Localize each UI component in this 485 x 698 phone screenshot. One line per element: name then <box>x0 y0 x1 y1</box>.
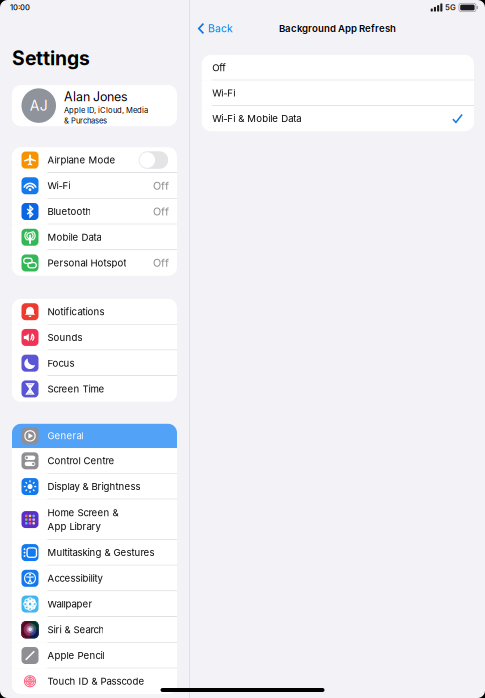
button[interactable]: Wi-Fi & Mobile Data <box>202 106 474 131</box>
button[interactable]: Airplane Mode <box>12 147 177 173</box>
staticText: Wi-Fi <box>47 180 70 192</box>
staticText: Bluetooth <box>47 206 91 217</box>
staticText: Home Screen & <box>47 507 118 519</box>
button[interactable]: Home Screen & <box>12 499 177 540</box>
staticText: Wi-Fi & Mobile Data <box>212 113 301 124</box>
staticText: Off <box>153 205 169 218</box>
staticText: Off <box>212 62 226 73</box>
staticText: Apple Pencil <box>47 650 104 661</box>
staticText: Focus <box>47 357 74 369</box>
staticText: App Library <box>47 521 100 532</box>
button[interactable]: Siri & Search <box>12 617 177 643</box>
staticText: Apple ID, iCloud, Media <box>64 106 148 115</box>
button[interactable]: Wi-Fi <box>12 173 177 199</box>
staticText: Sounds <box>47 332 82 343</box>
button[interactable]: Apple Pencil <box>12 643 177 668</box>
staticText: AJ <box>30 97 48 114</box>
staticText: & Purchases <box>64 116 107 125</box>
staticText: Control Centre <box>47 455 114 467</box>
staticText: Display & Brightness <box>47 481 140 492</box>
staticText: 5G <box>445 3 456 12</box>
button[interactable]: Notifications <box>12 299 177 324</box>
button[interactable]: Off <box>202 55 474 80</box>
button[interactable]: Control Centre <box>12 448 177 474</box>
button[interactable]: AJ <box>12 85 177 126</box>
staticText: Notifications <box>47 306 104 317</box>
staticText: Wallpaper <box>47 598 92 610</box>
button[interactable]: Focus <box>12 350 177 376</box>
staticText: Siri & Search <box>47 624 104 636</box>
button[interactable]: Wallpaper <box>12 591 177 617</box>
staticText: Multitasking & Gestures <box>47 547 154 558</box>
staticText: Off <box>153 256 169 269</box>
staticText: Off <box>153 179 169 192</box>
button[interactable]: Sounds <box>12 325 177 350</box>
staticText: Mobile Data <box>47 231 101 243</box>
staticText: Settings <box>12 47 90 70</box>
button[interactable]: Wi-Fi <box>202 80 474 106</box>
button[interactable]: Back <box>190 18 233 39</box>
staticText: Alan Jones <box>64 89 128 104</box>
staticText: Personal Hotspot <box>47 257 126 269</box>
staticText: Back <box>208 22 233 35</box>
button[interactable]: Touch ID & Passcode <box>12 668 177 694</box>
button[interactable]: Accessibility <box>12 565 177 591</box>
staticText: 10:00 <box>10 3 30 12</box>
staticText: Touch ID & Passcode <box>47 675 144 687</box>
button[interactable]: General <box>12 424 177 448</box>
staticText: Screen Time <box>47 383 104 395</box>
button[interactable]: Display & Brightness <box>12 474 177 499</box>
staticText: Accessibility <box>47 572 102 584</box>
button[interactable]: Multitasking & Gestures <box>12 540 177 565</box>
button[interactable]: Screen Time <box>12 376 177 402</box>
button[interactable]: Personal Hotspot <box>12 250 177 276</box>
staticText: General <box>47 430 83 442</box>
staticText: Wi-Fi <box>212 87 235 99</box>
staticText: Airplane Mode <box>47 154 115 166</box>
staticText: Background App Refresh <box>279 23 396 34</box>
button[interactable]: Bluetooth <box>12 199 177 224</box>
button[interactable]: Mobile Data <box>12 224 177 250</box>
